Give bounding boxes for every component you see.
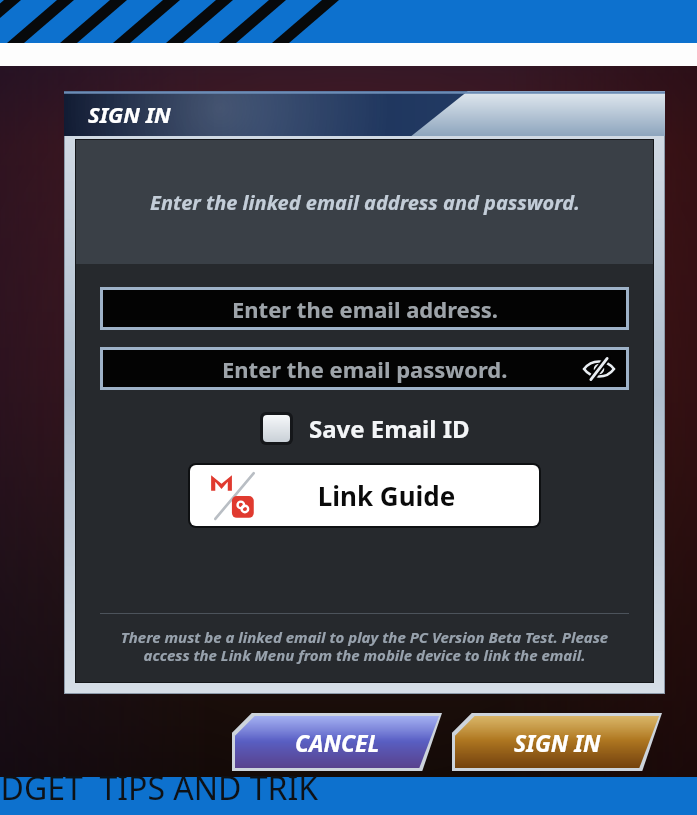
staticText: CANCEL [295,727,380,758]
staticText: SIGN IN [514,727,601,758]
staticText: .DGET TIPS AND TRIK [0,766,319,804]
staticText: Enter the email password. [222,354,508,384]
staticText: SIGN IN [88,99,171,129]
staticText: Link Guide [260,478,513,513]
button[interactable]: Save Email ID [76,412,653,445]
button[interactable]: SIGN IN [452,713,662,771]
staticText: Enter the email address. [232,294,498,324]
button[interactable]: Enter the email address. [103,290,626,327]
button[interactable]: Show password [582,357,616,381]
button[interactable]: CANCEL [232,713,442,771]
staticText: Enter the linked email address and passw… [150,189,580,216]
button[interactable]: Enter the email password. [103,350,626,387]
button[interactable]: Link Guide [190,465,539,526]
staticText: There must be a linked email to play the… [102,627,627,666]
staticText: Save Email ID [309,412,470,445]
